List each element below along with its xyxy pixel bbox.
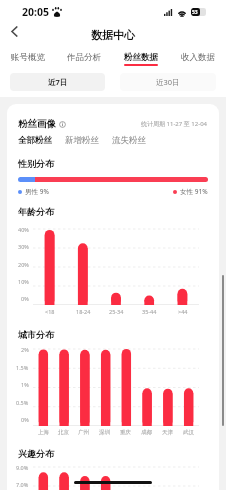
button[interactable]: 新增粉丝 — [65, 135, 99, 146]
staticText: 粉丝画像 — [18, 118, 56, 130]
staticText: 20:05 — [22, 5, 49, 19]
staticText: 1.5% — [16, 364, 29, 371]
staticText: 上海 — [38, 429, 49, 436]
staticText: 女性 91% — [180, 187, 208, 196]
staticText: 35-44 — [142, 308, 157, 315]
staticText: 成都 — [141, 429, 152, 436]
button[interactable]: 近7日 — [10, 73, 105, 91]
staticText: 20% — [18, 261, 29, 268]
button[interactable]: 近30日 — [120, 73, 216, 91]
staticText: 深圳 — [99, 429, 110, 436]
staticText: 北京 — [58, 429, 69, 436]
button[interactable]: 账号概览 — [0, 0, 56, 70]
staticText: 18-24 — [76, 308, 91, 315]
staticText: 53 — [192, 9, 198, 16]
staticText: 年龄分布 — [18, 206, 54, 217]
staticText: 7.0% — [16, 481, 29, 488]
staticText: 收入数据 — [181, 52, 215, 63]
staticText: <18 — [45, 308, 55, 315]
staticText: 男性 9% — [25, 187, 49, 196]
staticText: 重庆 — [120, 429, 131, 436]
staticText: 25-34 — [109, 308, 124, 315]
button[interactable]: 全部粉丝 — [18, 135, 52, 146]
staticText: 近7日 — [48, 77, 68, 87]
staticText: 粉丝数据 — [124, 52, 158, 63]
button[interactable]: 粉丝数据 — [112, 0, 169, 70]
staticText: 40% — [18, 226, 29, 233]
staticText: 账号概览 — [11, 52, 45, 63]
button[interactable]: 收入数据 — [169, 0, 226, 70]
staticText: 2% — [21, 346, 29, 353]
staticText: 统计周期 11-27 至 12-04 — [141, 120, 208, 128]
button[interactable]: Back — [4, 21, 25, 42]
staticText: 广州 — [78, 429, 89, 436]
staticText: 0.5% — [16, 399, 29, 406]
staticText: 兴趣分布 — [18, 448, 54, 459]
button[interactable]: 流失粉丝 — [112, 135, 146, 146]
staticText: 性别分布 — [18, 158, 54, 169]
staticText: 0% — [21, 416, 29, 423]
staticText: 30% — [18, 243, 29, 250]
staticText: 城市分布 — [18, 329, 54, 340]
staticText: 武汉 — [183, 429, 194, 436]
staticText: 9.0% — [16, 464, 29, 471]
staticText: >44 — [178, 308, 188, 315]
staticText: 天津 — [162, 429, 173, 436]
staticText: 10% — [18, 278, 29, 285]
staticText: 近30日 — [156, 77, 180, 87]
staticText: 作品分析 — [67, 52, 101, 63]
staticText: 0% — [21, 295, 29, 302]
button[interactable]: 作品分析 — [56, 0, 112, 70]
staticText: 1% — [21, 381, 29, 388]
staticText: 数据中心 — [91, 28, 135, 42]
